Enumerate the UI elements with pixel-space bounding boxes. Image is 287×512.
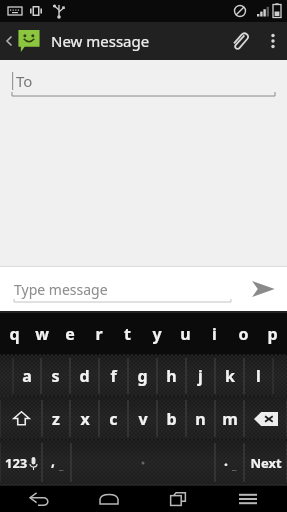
button[interactable]: Shift — [0, 397, 42, 440]
button[interactable]: p — [258, 313, 287, 355]
staticText: y — [152, 323, 162, 345]
staticText: e — [65, 323, 75, 345]
staticText: t — [124, 323, 131, 345]
button[interactable]: Recent apps — [148, 485, 208, 512]
button[interactable]: Type message — [14, 267, 231, 311]
staticText: g — [137, 365, 148, 387]
staticText: a — [22, 365, 32, 387]
button[interactable]: g — [128, 355, 157, 397]
staticText: f — [110, 365, 117, 387]
staticText: _ — [59, 458, 64, 472]
button[interactable]: t — [113, 313, 142, 355]
button[interactable]: Next — [244, 440, 287, 485]
staticText: l — [256, 365, 261, 387]
button[interactable]: z — [42, 397, 70, 440]
button[interactable]: j — [186, 355, 215, 397]
button[interactable]: , — [42, 440, 71, 485]
button[interactable]: Back — [9, 485, 69, 512]
button[interactable]: New message — [0, 22, 221, 60]
staticText: k — [225, 365, 235, 387]
staticText: w — [35, 323, 49, 345]
button[interactable]: Space — [71, 440, 215, 485]
button[interactable]: To — [0, 60, 287, 102]
button[interactable]: s — [41, 355, 70, 397]
button[interactable]: u — [171, 313, 200, 355]
staticText: j — [198, 365, 203, 387]
staticText: Type message — [14, 280, 108, 299]
button[interactable]: x — [70, 397, 99, 440]
button[interactable]: e — [56, 313, 84, 355]
staticText: c — [109, 408, 118, 430]
staticText: i — [212, 323, 217, 345]
button[interactable]: l — [244, 355, 273, 397]
button[interactable]: f — [99, 355, 128, 397]
staticText: d — [79, 365, 90, 387]
staticText: , — [51, 451, 55, 470]
staticText: b — [166, 408, 177, 430]
staticText: 123 — [5, 454, 28, 472]
staticText: New message — [51, 31, 150, 51]
button[interactable]: More options — [259, 22, 287, 60]
staticText: q — [9, 323, 20, 345]
button[interactable]: Send — [239, 267, 287, 311]
staticText: To — [16, 71, 33, 91]
button[interactable]: Attach — [221, 22, 259, 60]
staticText: n — [195, 408, 206, 430]
button[interactable]: y — [142, 313, 171, 355]
staticText: u — [180, 323, 191, 345]
button[interactable]: v — [128, 397, 157, 440]
staticText: h — [166, 365, 177, 387]
staticText: v — [138, 408, 148, 430]
staticText: o — [238, 323, 249, 345]
staticText: x — [80, 408, 90, 430]
staticText: r — [95, 323, 103, 345]
button[interactable]: h — [157, 355, 186, 397]
button[interactable]: Menu — [218, 485, 278, 512]
button[interactable]: i — [200, 313, 229, 355]
button[interactable]: b — [157, 397, 186, 440]
staticText: Next — [250, 454, 282, 472]
staticText: . — [224, 451, 228, 470]
staticText: p — [267, 323, 278, 345]
button[interactable]: a — [13, 355, 41, 397]
button[interactable]: c — [99, 397, 128, 440]
button[interactable]: o — [229, 313, 258, 355]
button[interactable]: r — [84, 313, 113, 355]
button[interactable]: Symbols and voice input — [0, 440, 42, 485]
staticText: z — [52, 408, 60, 430]
button[interactable]: q — [0, 313, 28, 355]
staticText: _ — [232, 458, 237, 472]
button[interactable]: m — [215, 397, 244, 440]
button[interactable]: d — [70, 355, 99, 397]
button[interactable]: Backspace — [244, 397, 287, 440]
staticText: s — [51, 365, 60, 387]
button[interactable]: Home — [79, 485, 139, 512]
button[interactable]: k — [215, 355, 244, 397]
staticText: m — [222, 408, 238, 430]
button[interactable]: w — [28, 313, 56, 355]
button[interactable]: . — [215, 440, 244, 485]
button[interactable]: n — [186, 397, 215, 440]
